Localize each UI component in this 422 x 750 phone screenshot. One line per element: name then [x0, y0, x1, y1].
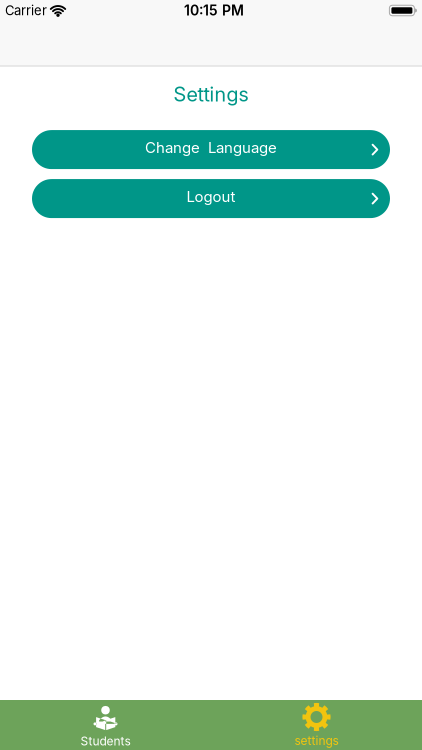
button[interactable]: Change Language — [32, 130, 390, 169]
button[interactable]: settings — [211, 700, 422, 750]
button[interactable]: Logout — [32, 179, 390, 218]
staticText: Students — [80, 734, 130, 748]
staticText: Logout — [186, 188, 235, 205]
staticText: Change Language — [145, 139, 277, 156]
staticText: settings — [294, 733, 338, 748]
button[interactable]: Students — [0, 700, 211, 750]
staticText: 10:15 PM — [184, 2, 244, 19]
staticText: Settings — [173, 82, 248, 106]
staticText: Carrier — [5, 3, 47, 18]
